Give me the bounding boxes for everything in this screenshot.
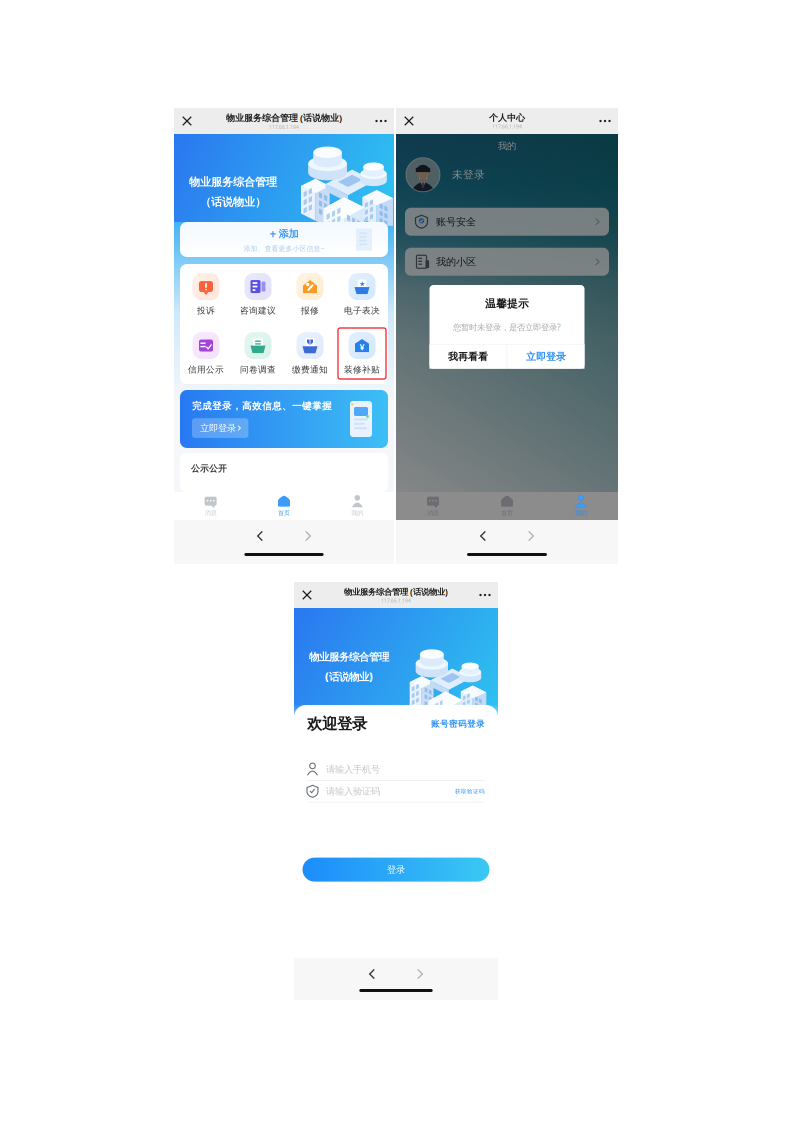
button[interactable]: 问卷调查 [232, 328, 284, 379]
staticText: 我的 [575, 509, 587, 517]
button[interactable]: Forward [521, 529, 541, 543]
staticText: 完成登录，高效信息、一键掌握 [192, 400, 332, 412]
staticText: 咨询建议 [240, 305, 276, 316]
button[interactable]: 我再看看 [429, 345, 507, 369]
staticText: 我的 [575, 509, 587, 517]
staticText: (话说物业) [325, 669, 373, 684]
button[interactable]: 投诉 [180, 269, 232, 320]
button[interactable]: Back [473, 529, 493, 543]
button[interactable]: Forward [410, 967, 430, 981]
staticText: 账号密码登录 [431, 719, 485, 729]
button[interactable]: Close [396, 108, 422, 134]
button[interactable]: 首页 [470, 492, 544, 520]
button[interactable]: 报修 [284, 269, 336, 320]
button[interactable]: Close [294, 582, 320, 608]
staticText: 电子表决 [344, 305, 380, 316]
staticText: 立即登录 [200, 422, 236, 434]
button[interactable]: 消息 [174, 492, 247, 520]
staticText: 报修 [301, 305, 319, 316]
button[interactable]: 我的 [544, 492, 618, 520]
staticText: + [269, 226, 276, 242]
staticText: 首页 [501, 509, 513, 517]
staticText: 消息 [205, 509, 217, 517]
staticText: 消息 [427, 509, 439, 517]
staticText: 我的 [351, 509, 363, 517]
button[interactable]: 立即登录 [507, 345, 584, 369]
staticText: 首页 [278, 509, 290, 517]
staticText: 我的小区 [436, 255, 476, 268]
staticText: 添加 [278, 227, 298, 240]
button[interactable]: 消息 [396, 492, 470, 520]
button[interactable]: 我的小区 [405, 248, 609, 276]
button[interactable]: 登录 [302, 858, 489, 882]
button[interactable]: 信用公示 [180, 328, 232, 379]
staticText: 添加、查看更多小区信息~ [243, 244, 324, 253]
button[interactable]: 我的 [544, 492, 618, 520]
staticText: 个人中心 [489, 112, 525, 123]
staticText: 获取验证码 [455, 788, 485, 795]
button[interactable]: More options [592, 108, 618, 134]
button[interactable]: 缴费通知 [284, 328, 336, 379]
staticText: 117.66.1.194 [381, 597, 411, 604]
staticText: 请输入验证码 [326, 785, 380, 797]
staticText: 登录 [387, 864, 405, 875]
staticText: 我再看看 [448, 350, 488, 363]
button[interactable]: 我的 [321, 492, 394, 520]
button[interactable]: + [180, 222, 388, 257]
staticText: 请输入手机号 [326, 764, 380, 775]
staticText: 物业服务综合管理 (话说物业) [344, 586, 448, 597]
staticText: 物业服务综合管理 [309, 650, 389, 663]
button[interactable]: Back [250, 529, 270, 543]
staticText: ¥ [359, 341, 364, 353]
button[interactable]: 获取验证码 [455, 788, 485, 795]
staticText: 账号安全 [436, 215, 476, 228]
staticText: 物业服务综合管理 [189, 175, 277, 189]
staticText: 物业服务综合管理 (话说物业) [226, 112, 342, 124]
staticText: 117.66.1.194 [492, 123, 522, 130]
button[interactable]: ★ [336, 269, 388, 320]
button[interactable]: 立即登录 [192, 418, 248, 438]
staticText: （话说物业） [200, 195, 266, 209]
button[interactable]: Close [174, 108, 200, 134]
staticText: 未登录 [452, 168, 485, 181]
staticText: 公示公开 [191, 463, 227, 474]
button[interactable]: 账号安全 [405, 208, 609, 236]
staticText: 立即登录 [526, 350, 566, 363]
staticText: 117.66.1.194 [269, 124, 299, 130]
button[interactable]: Back [362, 967, 382, 981]
button[interactable]: 请输入手机号 [294, 759, 498, 780]
button[interactable]: 账号密码登录 [431, 719, 485, 729]
staticText: 欢迎登录 [307, 714, 367, 734]
button[interactable]: 咨询建议 [232, 269, 284, 320]
staticText: ★ [359, 280, 365, 288]
button[interactable]: ¥ [336, 328, 388, 379]
staticText: 缴费通知 [292, 364, 328, 375]
staticText: 装修补贴 [344, 364, 380, 375]
button[interactable]: More options [368, 108, 394, 134]
staticText: 投诉 [197, 305, 215, 316]
staticText: 问卷调查 [240, 364, 276, 375]
button[interactable]: More options [472, 582, 498, 608]
staticText: 温馨提示 [485, 297, 529, 310]
button[interactable]: Forward [298, 529, 318, 543]
staticText: 您暂时未登录，是否立即登录? [453, 321, 561, 333]
staticText: 信用公示 [188, 364, 224, 375]
staticText: 我的 [498, 140, 516, 152]
button[interactable]: 首页 [247, 492, 321, 520]
